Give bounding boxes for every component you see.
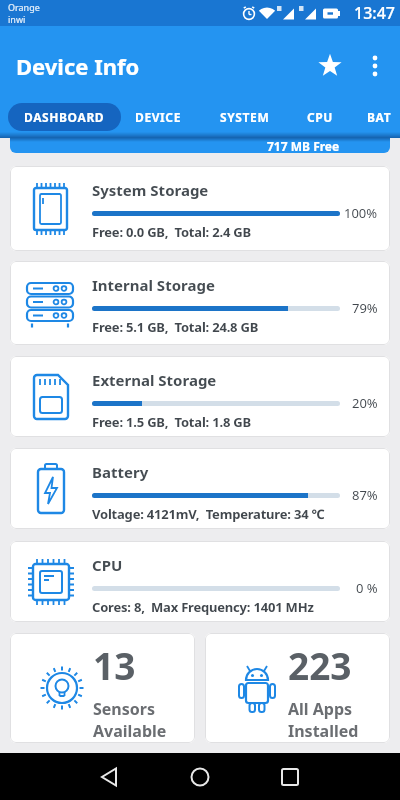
button[interactable]: DEVICE [135,105,181,129]
button[interactable]: BAT [367,105,392,129]
staticText: Installed [288,720,359,742]
button[interactable]: Battery [10,448,390,529]
staticText: 20% [352,394,378,412]
button[interactable] [364,55,386,77]
staticText: DASHBOARD [24,109,105,125]
staticText: 87% [352,486,378,504]
button[interactable] [170,753,230,800]
button[interactable] [80,753,140,800]
staticText: Orange [8,1,40,13]
button[interactable]: DASHBOARD [8,103,121,131]
staticText: System Storage [92,180,209,200]
staticText: SYSTEM [220,109,270,125]
button[interactable]: SYSTEM [220,105,270,129]
staticText: External Storage [92,370,217,390]
staticText: DEVICE [135,109,181,125]
staticText: Free: 1.5 GB, Total: 1.8 GB [92,413,251,431]
staticText: Available [93,720,167,742]
staticText: 717 MB Free [267,138,340,153]
staticText: Device Info [16,51,140,81]
staticText: 13:47 [354,2,395,24]
staticText: Battery [92,462,149,482]
button[interactable]: CPU [307,105,334,129]
button[interactable] [316,52,344,80]
staticText: Free: 5.1 GB, Total: 24.8 GB [92,318,259,336]
button[interactable]: Internal Storage [10,261,390,345]
button[interactable] [260,753,320,800]
staticText: 79% [352,299,378,317]
staticText: Voltage: 4121mV, Temperature: 34 ℃ [92,505,325,523]
staticText: 223 [288,640,352,690]
button[interactable]: System Storage [10,166,390,251]
staticText: 0 % [356,579,378,597]
staticText: All Apps [288,698,353,720]
staticText: CPU [92,555,123,575]
staticText: 13 [93,640,136,690]
button[interactable]: 13 [10,633,195,743]
staticText: Internal Storage [92,275,215,295]
staticText: BAT [367,109,392,125]
button[interactable]: 223 [205,633,390,743]
staticText: Free: 0.0 GB, Total: 2.4 GB [92,223,251,241]
button[interactable]: CPU [10,541,390,622]
staticText: Cores: 8, Max Frequency: 1401 MHz [92,598,314,616]
staticText: CPU [307,109,334,125]
staticText: 100% [344,204,378,222]
button[interactable]: External Storage [10,356,390,437]
staticText: Sensors [93,698,155,720]
staticText: inwi [8,13,26,25]
